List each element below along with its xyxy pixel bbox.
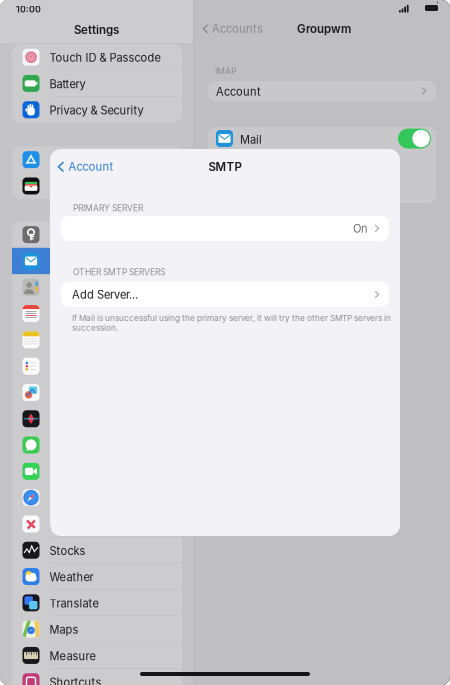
staticText: Passwords	[49, 229, 107, 242]
button[interactable]: On	[61, 216, 389, 241]
button[interactable]: App Store	[12, 146, 182, 173]
button[interactable]: Passwords	[12, 221, 182, 248]
button[interactable]: Add Server...	[61, 282, 389, 307]
staticText: News	[49, 518, 78, 531]
staticText: Accounts	[212, 22, 263, 36]
button[interactable]: Reminders	[12, 353, 182, 379]
staticText: Touch ID & Passcode	[49, 51, 160, 64]
staticText: Measure	[49, 649, 95, 663]
button[interactable]: Shortcuts	[12, 669, 182, 685]
staticText: Settings	[74, 23, 119, 37]
button[interactable]: Freeform	[12, 379, 182, 406]
button[interactable]: Privacy & Security	[12, 97, 182, 123]
button[interactable]: Account	[57, 160, 113, 174]
staticText: App Store	[49, 154, 102, 167]
staticText: On	[353, 222, 368, 235]
button[interactable]: Notes	[12, 327, 182, 353]
staticText: Contacts	[49, 281, 97, 295]
button[interactable]: Measure	[12, 642, 182, 669]
staticText: Stocks	[49, 544, 85, 558]
button[interactable]: FaceTime	[12, 458, 182, 484]
button[interactable]: Contacts	[12, 274, 182, 300]
button[interactable]: Mail	[12, 248, 182, 274]
button[interactable]: Account	[208, 81, 436, 102]
staticText: Translate	[49, 597, 98, 610]
staticText: IMAP	[215, 66, 237, 76]
staticText: Maps	[49, 623, 78, 636]
button[interactable]: Translate	[12, 590, 182, 616]
staticText: Add Server...	[72, 288, 138, 301]
staticText: Privacy & Security	[49, 104, 143, 117]
staticText: Shortcuts	[49, 676, 101, 685]
staticText: SMTP	[208, 160, 241, 174]
button[interactable]: Calendar	[12, 300, 182, 327]
button[interactable]: Safari	[12, 484, 182, 511]
staticText: Mail	[240, 133, 262, 146]
button[interactable]: Maps	[12, 616, 182, 642]
staticText: Weather	[49, 571, 93, 584]
staticText: PRIMARY SERVER	[73, 203, 143, 213]
staticText: Battery	[49, 77, 85, 91]
staticText: If Mail is unsuccessful using the primar…	[72, 313, 391, 333]
staticText: Calendar	[49, 307, 96, 321]
staticText: Groupwm	[297, 22, 351, 36]
staticText: Account	[216, 85, 261, 98]
button[interactable]: Messages	[12, 432, 182, 458]
button[interactable]: Accounts	[202, 22, 263, 36]
button[interactable]: Battery	[12, 70, 182, 97]
button[interactable]: Wallet	[12, 173, 182, 199]
button[interactable]: Stocks	[12, 537, 182, 563]
staticText: 10:00	[16, 4, 41, 15]
button[interactable]: News	[12, 511, 182, 537]
staticText: Account	[68, 160, 113, 174]
staticText: OTHER SMTP SERVERS	[73, 267, 165, 277]
button[interactable]: Touch ID & Passcode	[12, 44, 182, 70]
button[interactable]: Health	[12, 406, 182, 432]
button[interactable]: Weather	[12, 563, 182, 590]
